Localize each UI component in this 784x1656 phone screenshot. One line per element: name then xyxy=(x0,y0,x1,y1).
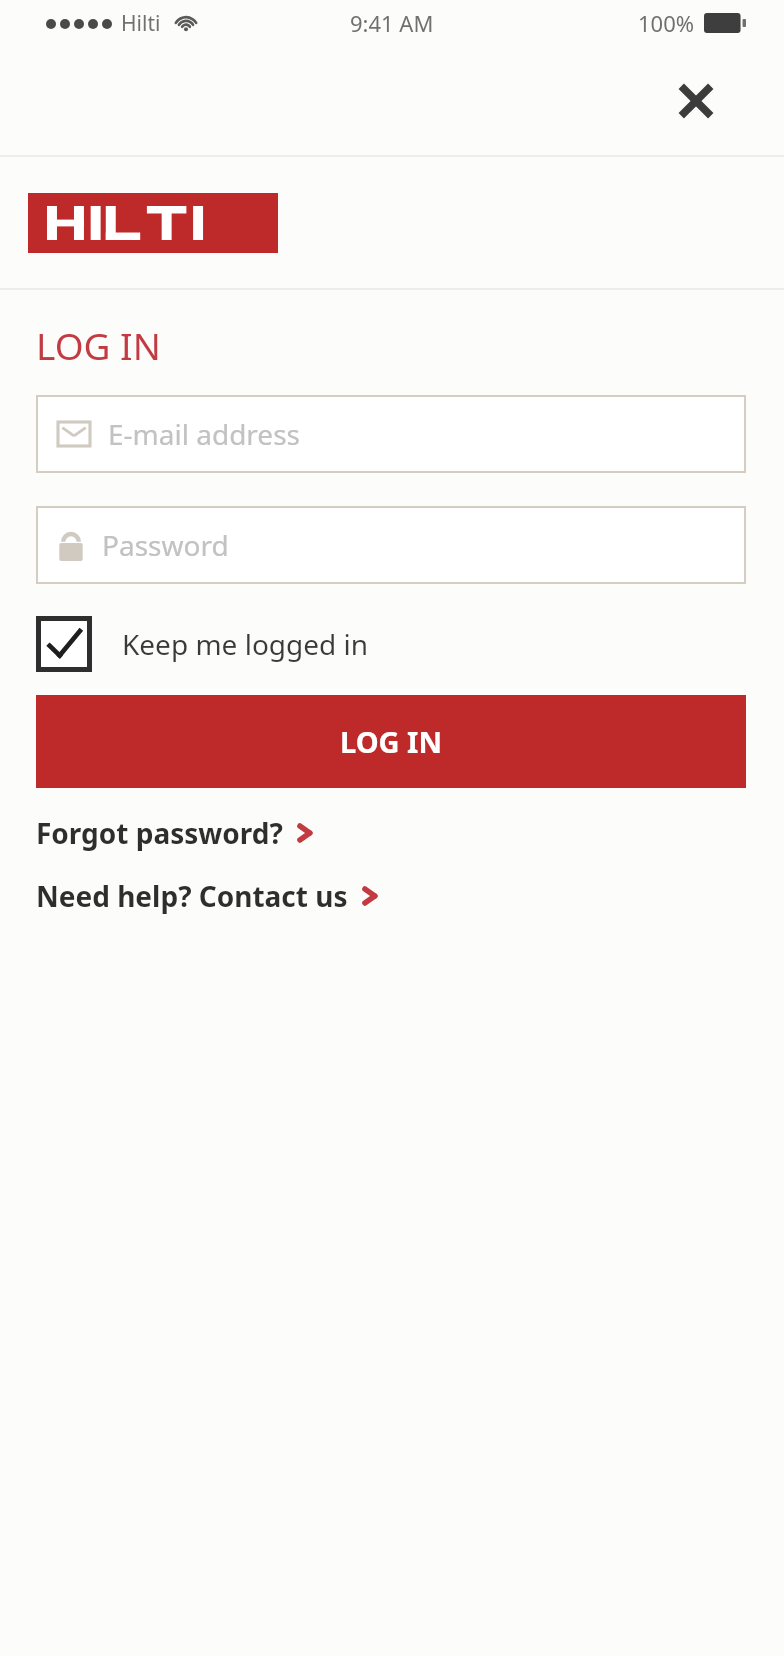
button[interactable]: Forgot password? xyxy=(36,814,313,852)
button[interactable] xyxy=(28,193,278,253)
staticText: Forgot password? xyxy=(36,814,283,852)
button[interactable]: Need help? Contact us xyxy=(36,877,378,915)
staticText: 9:41 AM xyxy=(350,8,434,38)
staticText: LOG IN xyxy=(36,320,161,370)
staticText: E-mail address xyxy=(108,415,300,453)
staticText: Need help? Contact us xyxy=(36,877,348,915)
staticText: Hilti xyxy=(121,9,161,38)
button[interactable]: E-mail address xyxy=(36,395,746,473)
staticText: Password xyxy=(102,526,229,564)
staticText: Keep me logged in xyxy=(122,625,369,663)
staticText: 100% xyxy=(638,8,695,38)
staticText: LOG IN xyxy=(340,722,442,761)
button[interactable]: Close xyxy=(666,71,726,131)
button[interactable]: Keep me logged in xyxy=(36,616,369,672)
button[interactable]: Password xyxy=(36,506,746,584)
button[interactable]: LOG IN xyxy=(36,695,746,788)
